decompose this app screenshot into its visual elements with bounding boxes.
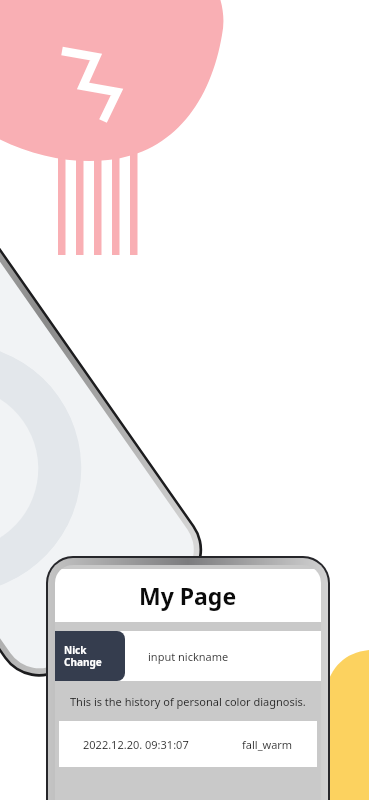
button[interactable]: input nickname [55, 631, 321, 681]
staticText: My Page [139, 580, 237, 611]
other: Camera preview phone [0, 167, 219, 693]
button[interactable]: My Page [55, 569, 321, 622]
staticText: fall_warm [242, 737, 293, 752]
staticText: Nick Change [64, 643, 102, 669]
staticText: 2022.12.20. 09:31:07 [83, 737, 189, 752]
staticText: This is the history of personal color di… [70, 694, 306, 709]
button[interactable]: Nick Change [55, 631, 125, 681]
staticText: input nickname [148, 649, 229, 664]
button[interactable]: 2022.12.20. 09:31:07 [59, 721, 317, 767]
